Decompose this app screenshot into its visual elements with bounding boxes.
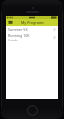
staticText: Running 10K	[8, 33, 30, 38]
staticText: My Programs	[21, 20, 44, 25]
button[interactable]: Home	[27, 105, 38, 116]
button[interactable]: My Programs	[21, 20, 44, 25]
button[interactable]: Running 10K	[6, 33, 58, 41]
button[interactable]: Open navigation menu	[8, 20, 13, 25]
button[interactable]: Summer 5K	[6, 26, 58, 33]
staticText: 4 weeks	[8, 39, 18, 41]
staticText: Summer 5K	[8, 27, 28, 32]
